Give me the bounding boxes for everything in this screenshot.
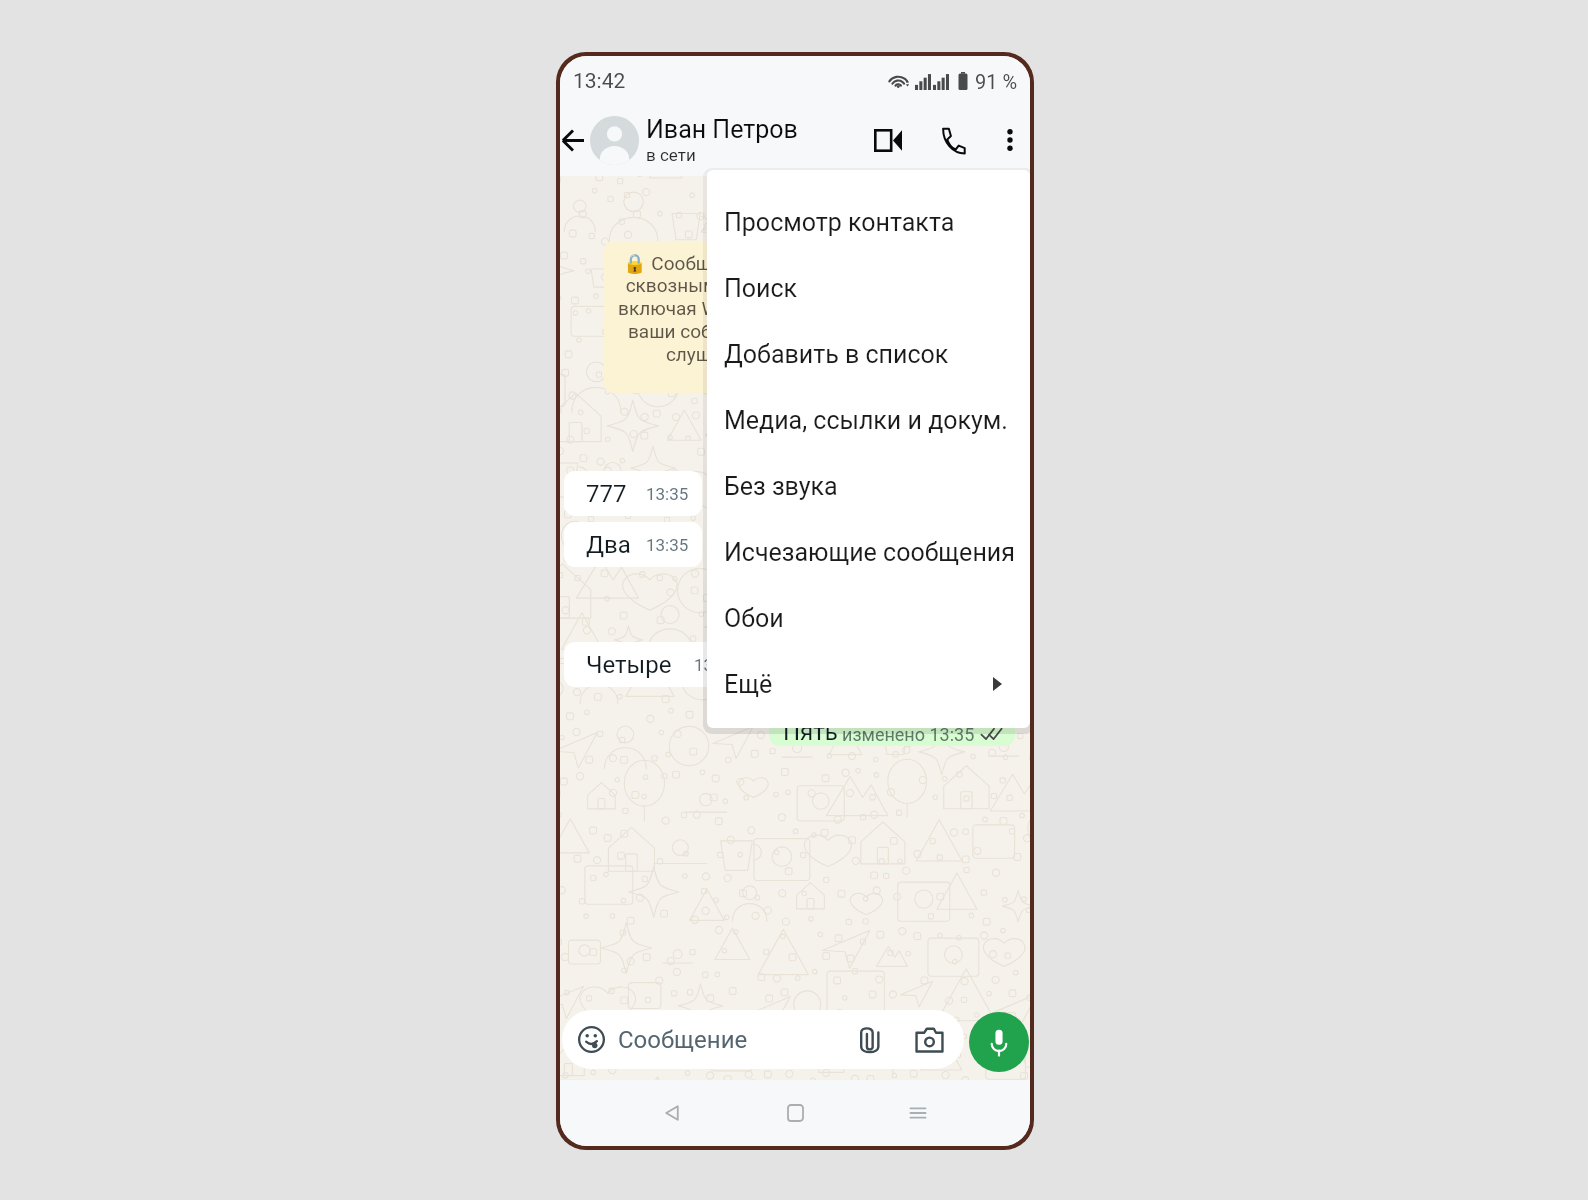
staticText: Добавить в список	[724, 340, 949, 369]
staticText: 91 %	[975, 70, 1018, 93]
button[interactable]: Back	[648, 1089, 696, 1137]
staticText: 777	[586, 480, 627, 508]
button[interactable]: Пять	[769, 698, 1015, 746]
button[interactable]: Медиа, ссылки и докум.	[707, 387, 1030, 453]
staticText: Пять	[783, 718, 838, 746]
staticText: Без звука	[724, 472, 838, 501]
staticText: Медиа, ссылки и докум.	[724, 406, 1008, 435]
staticText: Поиск	[724, 274, 798, 303]
button[interactable]: Video call	[863, 112, 913, 168]
staticText: Просмотр контакта	[724, 208, 955, 237]
button[interactable]: More options	[990, 112, 1030, 168]
button[interactable]: Home	[771, 1089, 819, 1137]
staticText: изменено 13:35	[842, 724, 975, 745]
button[interactable]: Исчезающие сообщения	[707, 519, 1030, 585]
button[interactable]: Back	[560, 114, 586, 166]
staticText: Четыре	[586, 651, 672, 679]
staticText: Иван Петров	[646, 115, 798, 144]
button[interactable]: Camera	[912, 1023, 946, 1057]
staticText: 13:35	[694, 655, 737, 675]
button[interactable]: Обои	[707, 585, 1030, 651]
staticText: 13:35	[646, 484, 689, 504]
staticText: 13:42	[573, 69, 626, 94]
button[interactable]: 777	[564, 471, 702, 516]
staticText: Исчезающие сообщения	[724, 538, 1015, 567]
staticText: Два	[586, 531, 631, 559]
button[interactable]: Два	[564, 522, 702, 567]
staticText: 13:35	[646, 535, 689, 555]
button[interactable]: Recents	[894, 1089, 942, 1137]
button[interactable]: Четыре	[564, 642, 750, 687]
staticText: Сообщение	[618, 1026, 748, 1054]
button[interactable]: Без звука	[707, 453, 1030, 519]
button[interactable]: Voice message	[969, 1012, 1029, 1072]
staticText: 🔒 Сообщения защищены сквозным шифрование…	[618, 252, 862, 365]
button[interactable]: Просмотр контакта	[707, 189, 1030, 255]
button[interactable]: Сообщение	[562, 1010, 964, 1069]
button[interactable]: Поиск	[707, 255, 1030, 321]
staticText: в сети	[646, 145, 696, 165]
staticText: Ещё	[724, 670, 773, 699]
button[interactable]: Ещё	[707, 651, 1030, 717]
staticText: Обои	[724, 604, 784, 633]
button[interactable]: Добавить в список	[707, 321, 1030, 387]
button[interactable]: Attach	[853, 1023, 887, 1057]
button[interactable]: Voice call	[928, 112, 978, 168]
